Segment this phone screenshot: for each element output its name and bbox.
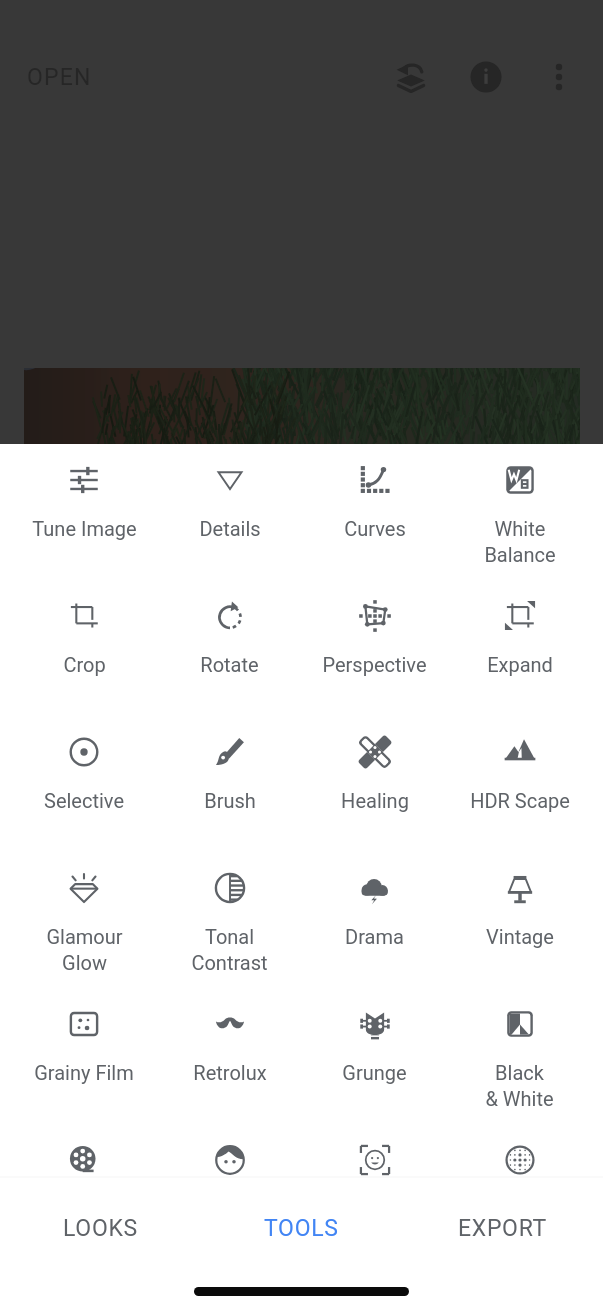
staticText: Drama (345, 925, 404, 948)
button[interactable]: Double Exposure (447, 1124, 592, 1260)
staticText: Rotate (200, 653, 259, 676)
staticText: LOOKS (63, 1215, 138, 1242)
staticText: EXPORT (458, 1215, 548, 1242)
staticText: Crop (63, 653, 106, 676)
staticText: Double Exposure (447, 1197, 592, 1246)
staticText: Expand (487, 653, 553, 676)
staticText: Glamour Glow (46, 925, 123, 974)
button[interactable]: HDR Scape (447, 716, 592, 852)
staticText: Grainy Film (34, 1061, 134, 1084)
button[interactable]: Drama (302, 852, 447, 988)
button[interactable]: Tune Image (11, 444, 157, 580)
staticText: Head Pose (326, 1197, 423, 1220)
staticText: Curves (344, 517, 406, 540)
staticText: HDR Scape (470, 789, 570, 812)
button[interactable]: TOOLS (201, 1178, 402, 1278)
button[interactable]: Selective (11, 716, 157, 852)
staticText: Brush (204, 789, 256, 812)
button[interactable]: Grainy Film (11, 988, 157, 1124)
button[interactable]: White Balance (447, 444, 592, 580)
button[interactable]: Details (157, 444, 302, 580)
button[interactable]: Tonal Contrast (157, 852, 302, 988)
staticText: Details (199, 517, 261, 540)
button[interactable]: Undo stack (383, 49, 439, 105)
staticText: Tonal Contrast (191, 925, 268, 974)
button[interactable]: LOOKS (0, 1178, 201, 1278)
button[interactable]: Vintage (447, 852, 592, 988)
staticText: Tune Image (32, 517, 137, 540)
staticText: OPEN (27, 64, 92, 91)
staticText: Grunge (342, 1061, 407, 1084)
staticText: Lens Blur (43, 1197, 126, 1220)
staticText: Vintage (486, 925, 554, 948)
button[interactable]: Rotate (157, 580, 302, 716)
staticText: Selective (44, 789, 124, 812)
button[interactable]: Healing (302, 716, 447, 852)
staticText: TOOLS (264, 1215, 339, 1242)
button[interactable]: Crop (11, 580, 157, 716)
button[interactable]: Head Pose (302, 1124, 447, 1260)
button[interactable]: Info (458, 49, 514, 105)
button[interactable]: Lens Blur (11, 1124, 157, 1260)
button[interactable]: Retrolux (157, 988, 302, 1124)
button[interactable]: Curves (302, 444, 447, 580)
button[interactable]: Expand (447, 580, 592, 716)
staticText: White Balance (484, 517, 556, 566)
button[interactable]: Brush (157, 716, 302, 852)
staticText: Black & White (485, 1061, 554, 1110)
staticText: Healing (341, 789, 409, 812)
button[interactable]: More options (531, 49, 587, 105)
button[interactable]: Black & White (447, 988, 592, 1124)
staticText: Retrolux (193, 1061, 267, 1084)
button[interactable]: Glamour Glow (11, 852, 157, 988)
button[interactable]: EXPORT (402, 1178, 603, 1278)
button[interactable]: Portrait (157, 1124, 302, 1260)
button[interactable]: OPEN (4, 52, 115, 103)
button[interactable]: Grunge (302, 988, 447, 1124)
button[interactable]: Perspective (302, 580, 447, 716)
staticText: Perspective (322, 653, 427, 676)
